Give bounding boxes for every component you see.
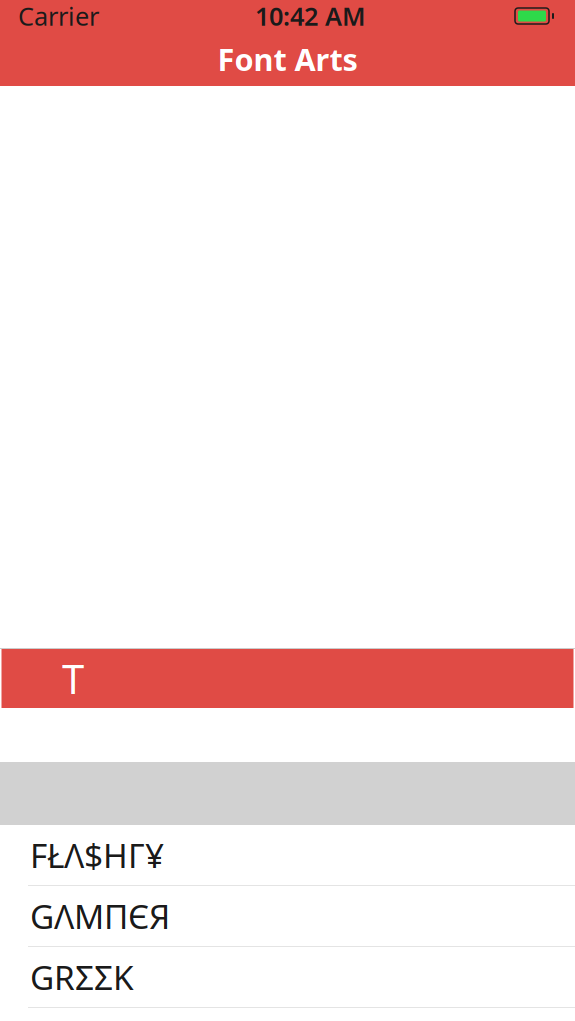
button[interactable]: FŁΛ$HΓ¥	[0, 825, 575, 886]
button[interactable]: GRΣΣK	[0, 947, 575, 1008]
staticText: GΛMΠЄЯ	[30, 894, 170, 938]
staticText: FŁΛ$HΓ¥	[30, 833, 164, 877]
staticText: Carrier	[18, 0, 99, 33]
button[interactable]: Share	[430, 649, 573, 708]
button[interactable]: GΛMΠЄЯ	[0, 886, 575, 947]
staticText: GRΣΣK	[30, 955, 134, 999]
staticText: T	[62, 652, 84, 705]
button[interactable]: Text style	[1, 649, 144, 708]
staticText: 10:42 AM	[255, 0, 366, 33]
staticText: Font Arts	[217, 39, 357, 79]
